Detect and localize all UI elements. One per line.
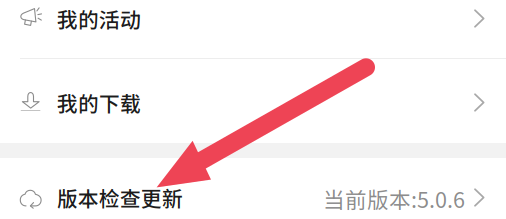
button[interactable]: 版本检查更新 [0,158,506,219]
button[interactable]: 我的活动 [0,0,506,59]
button[interactable]: 我的下载 [0,59,506,143]
staticText: 我的活动 [57,3,141,33]
staticText: 我的下载 [57,87,141,117]
staticText: 版本检查更新 [57,182,183,212]
staticText: 当前版本:5.0.6 [323,183,465,214]
